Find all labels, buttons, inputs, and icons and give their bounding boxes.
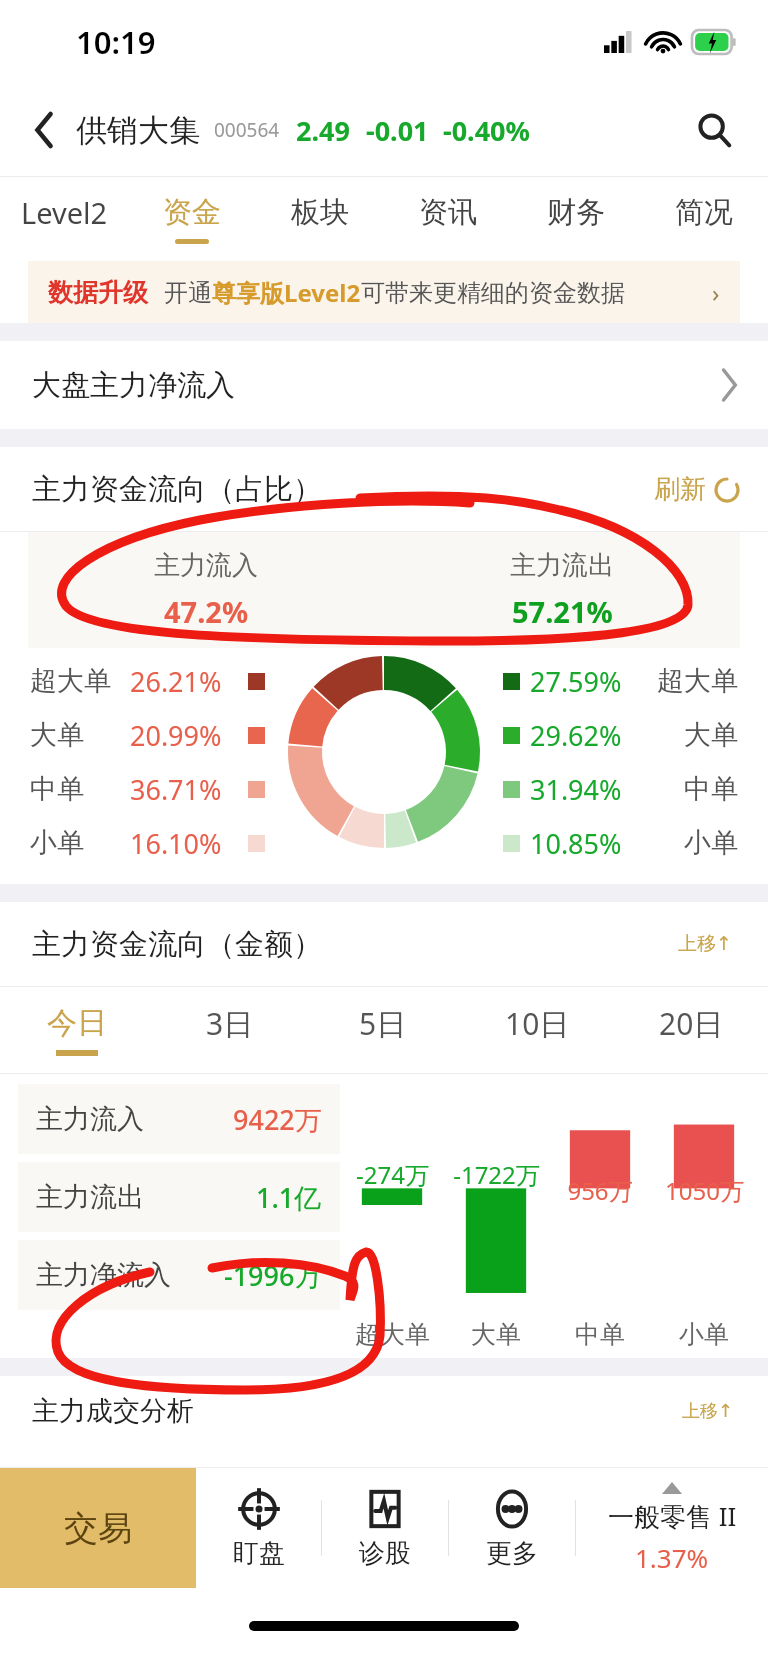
staticText: -274万 (356, 1158, 429, 1191)
staticText: 财务 (547, 194, 605, 231)
staticText: 主力流入 (154, 549, 258, 582)
button[interactable]: 诊股 (322, 1468, 448, 1588)
staticText: 小单 (30, 826, 84, 860)
staticText: -0.40% (443, 112, 530, 149)
staticText: 今日 (47, 1004, 107, 1042)
staticText: 开通 (164, 278, 212, 308)
staticText: 交易 (64, 1507, 132, 1550)
button[interactable]: 板块 (256, 177, 384, 261)
staticText: 小单 (679, 1319, 729, 1350)
staticText: 主力流入 (36, 1102, 144, 1136)
button[interactable]: 10日 (460, 987, 614, 1073)
staticText: 主力资金流向（金额） (32, 926, 322, 963)
staticText: 上移↑ (678, 932, 732, 956)
staticText: 10日 (505, 1003, 570, 1044)
button[interactable]: 3日 (153, 987, 306, 1073)
staticText: 简况 (675, 194, 733, 231)
staticText: 956万 (567, 1174, 633, 1207)
staticText: 盯盘 (233, 1537, 285, 1570)
staticText: 主力资金流向（占比） (32, 471, 322, 508)
staticText: › (712, 276, 720, 309)
staticText: 大单 (684, 718, 738, 752)
button[interactable]: 上移↑ (682, 1400, 734, 1423)
button[interactable]: 资讯 (384, 177, 512, 261)
button[interactable]: 简况 (640, 177, 768, 261)
button[interactable]: 20日 (614, 987, 768, 1073)
staticText: 1050万 (665, 1174, 744, 1207)
staticText: 36.71% (130, 771, 222, 808)
button[interactable]: Search (688, 104, 740, 156)
button[interactable]: 数据升级 (28, 261, 740, 323)
staticText: 上移↑ (682, 1400, 734, 1423)
button[interactable]: 今日 (0, 987, 153, 1073)
staticText: 47.2% (164, 592, 249, 631)
staticText: 刷新 (654, 473, 706, 506)
staticText: 主力流出 (510, 549, 614, 582)
staticText: 小单 (684, 826, 738, 860)
staticText: Level2 (21, 193, 108, 232)
button[interactable]: 一般零售 II (576, 1468, 768, 1588)
staticText: 26.21% (130, 663, 222, 700)
staticText: 31.94% (530, 771, 622, 808)
staticText: 1.1亿 (256, 1179, 322, 1216)
staticText: 可带来更精细的资金数据 (361, 278, 625, 308)
staticText: 大盘主力净流入 (32, 367, 235, 404)
staticText: 尊享版Level2 (212, 276, 361, 309)
staticText: 超大单 (355, 1319, 430, 1350)
staticText: -0.01 (366, 112, 429, 149)
button[interactable]: 交易 (0, 1468, 196, 1588)
staticText: 诊股 (359, 1537, 411, 1570)
button[interactable]: Back (22, 107, 68, 153)
staticText: 更多 (486, 1537, 538, 1570)
staticText: 大单 (471, 1319, 521, 1350)
staticText: 数据升级 (48, 277, 148, 308)
staticText: 1.37% (635, 1540, 709, 1575)
button[interactable]: 刷新 (654, 473, 740, 506)
staticText: 中单 (684, 772, 738, 806)
staticText: 10:19 (76, 21, 156, 63)
staticText: 主力净流入 (36, 1258, 171, 1292)
staticText: 主力成交分析 (32, 1394, 194, 1428)
staticText: 27.59% (530, 663, 622, 700)
staticText: 中单 (575, 1319, 625, 1350)
staticText: 20日 (659, 1003, 724, 1044)
staticText: -1996万 (224, 1257, 322, 1294)
staticText: 10.85% (530, 825, 622, 862)
staticText: -1722万 (453, 1158, 540, 1191)
button[interactable]: 更多 (449, 1468, 575, 1588)
staticText: 资金 (163, 194, 221, 231)
staticText: 一般零售 II (608, 1498, 737, 1534)
staticText: 5日 (359, 1003, 407, 1044)
button[interactable]: 财务 (512, 177, 640, 261)
staticText: 2.49 (296, 112, 350, 149)
staticText: 资讯 (419, 194, 477, 231)
staticText: 3日 (206, 1003, 254, 1044)
button[interactable]: Level2 (0, 177, 128, 261)
staticText: 20.99% (130, 717, 222, 754)
button[interactable]: 大盘主力净流入 (32, 341, 738, 429)
staticText: 中单 (30, 772, 84, 806)
button[interactable]: 上移↑ (678, 932, 732, 956)
staticText: 57.21% (512, 592, 613, 631)
button[interactable]: 盯盘 (196, 1468, 321, 1588)
staticText: 16.10% (130, 825, 222, 862)
button[interactable]: 资金 (128, 177, 256, 261)
staticText: 超大单 (657, 664, 738, 698)
staticText: 9422万 (233, 1101, 322, 1138)
staticText: 超大单 (30, 664, 111, 698)
staticText: 供销大集 (76, 111, 200, 150)
button[interactable]: 5日 (306, 987, 460, 1073)
staticText: 板块 (291, 194, 349, 231)
staticText: 大单 (30, 718, 84, 752)
staticText: 000564 (214, 117, 280, 143)
staticText: 29.62% (530, 717, 622, 754)
staticText: 主力流出 (36, 1180, 144, 1214)
